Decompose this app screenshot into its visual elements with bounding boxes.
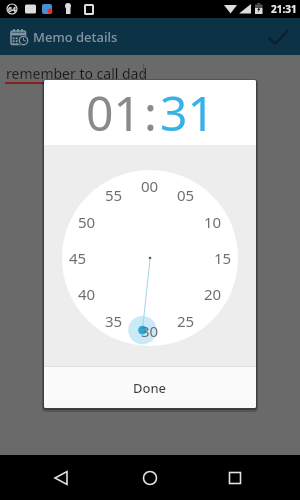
staticText: 64	[8, 5, 17, 15]
button[interactable]	[100, 455, 200, 500]
staticText: 55	[105, 185, 123, 205]
button[interactable]	[0, 455, 100, 500]
staticText: 25	[177, 311, 195, 331]
staticText: 35	[105, 311, 123, 331]
button[interactable]: 10	[199, 212, 227, 232]
staticText: 00	[141, 176, 159, 196]
button[interactable]: 05	[172, 185, 200, 205]
button[interactable]: Done	[44, 367, 256, 408]
staticText: remember to call dad	[6, 64, 148, 83]
staticText: :	[144, 80, 157, 145]
button[interactable]: 55	[100, 185, 128, 205]
button[interactable]: 40	[73, 284, 101, 304]
button[interactable]: 15	[209, 248, 237, 268]
staticText: Memo details	[33, 28, 118, 46]
button[interactable]: 25	[172, 311, 200, 331]
staticText: 05	[177, 185, 195, 205]
staticText: 30	[141, 321, 159, 341]
button[interactable]: 31	[160, 80, 215, 145]
button[interactable]: 30	[136, 321, 164, 341]
button[interactable]: 20	[199, 284, 227, 304]
staticText: 15	[214, 248, 232, 268]
button[interactable]	[263, 18, 300, 55]
button[interactable]: 00	[136, 176, 164, 196]
button[interactable]: 45	[64, 248, 92, 268]
staticText: Done	[133, 379, 167, 397]
button[interactable]: 01	[86, 80, 141, 145]
staticText: 20	[204, 284, 222, 304]
staticText: 21:31	[271, 2, 297, 16]
staticText: 40	[78, 284, 96, 304]
staticText: 31	[160, 80, 215, 145]
button[interactable]: 50	[73, 212, 101, 232]
button[interactable]	[200, 455, 300, 500]
button[interactable]: 35	[100, 311, 128, 331]
staticText: 01	[86, 80, 141, 145]
staticText: 50	[78, 212, 96, 232]
staticText: 10	[204, 212, 222, 232]
staticText: 45	[69, 248, 87, 268]
